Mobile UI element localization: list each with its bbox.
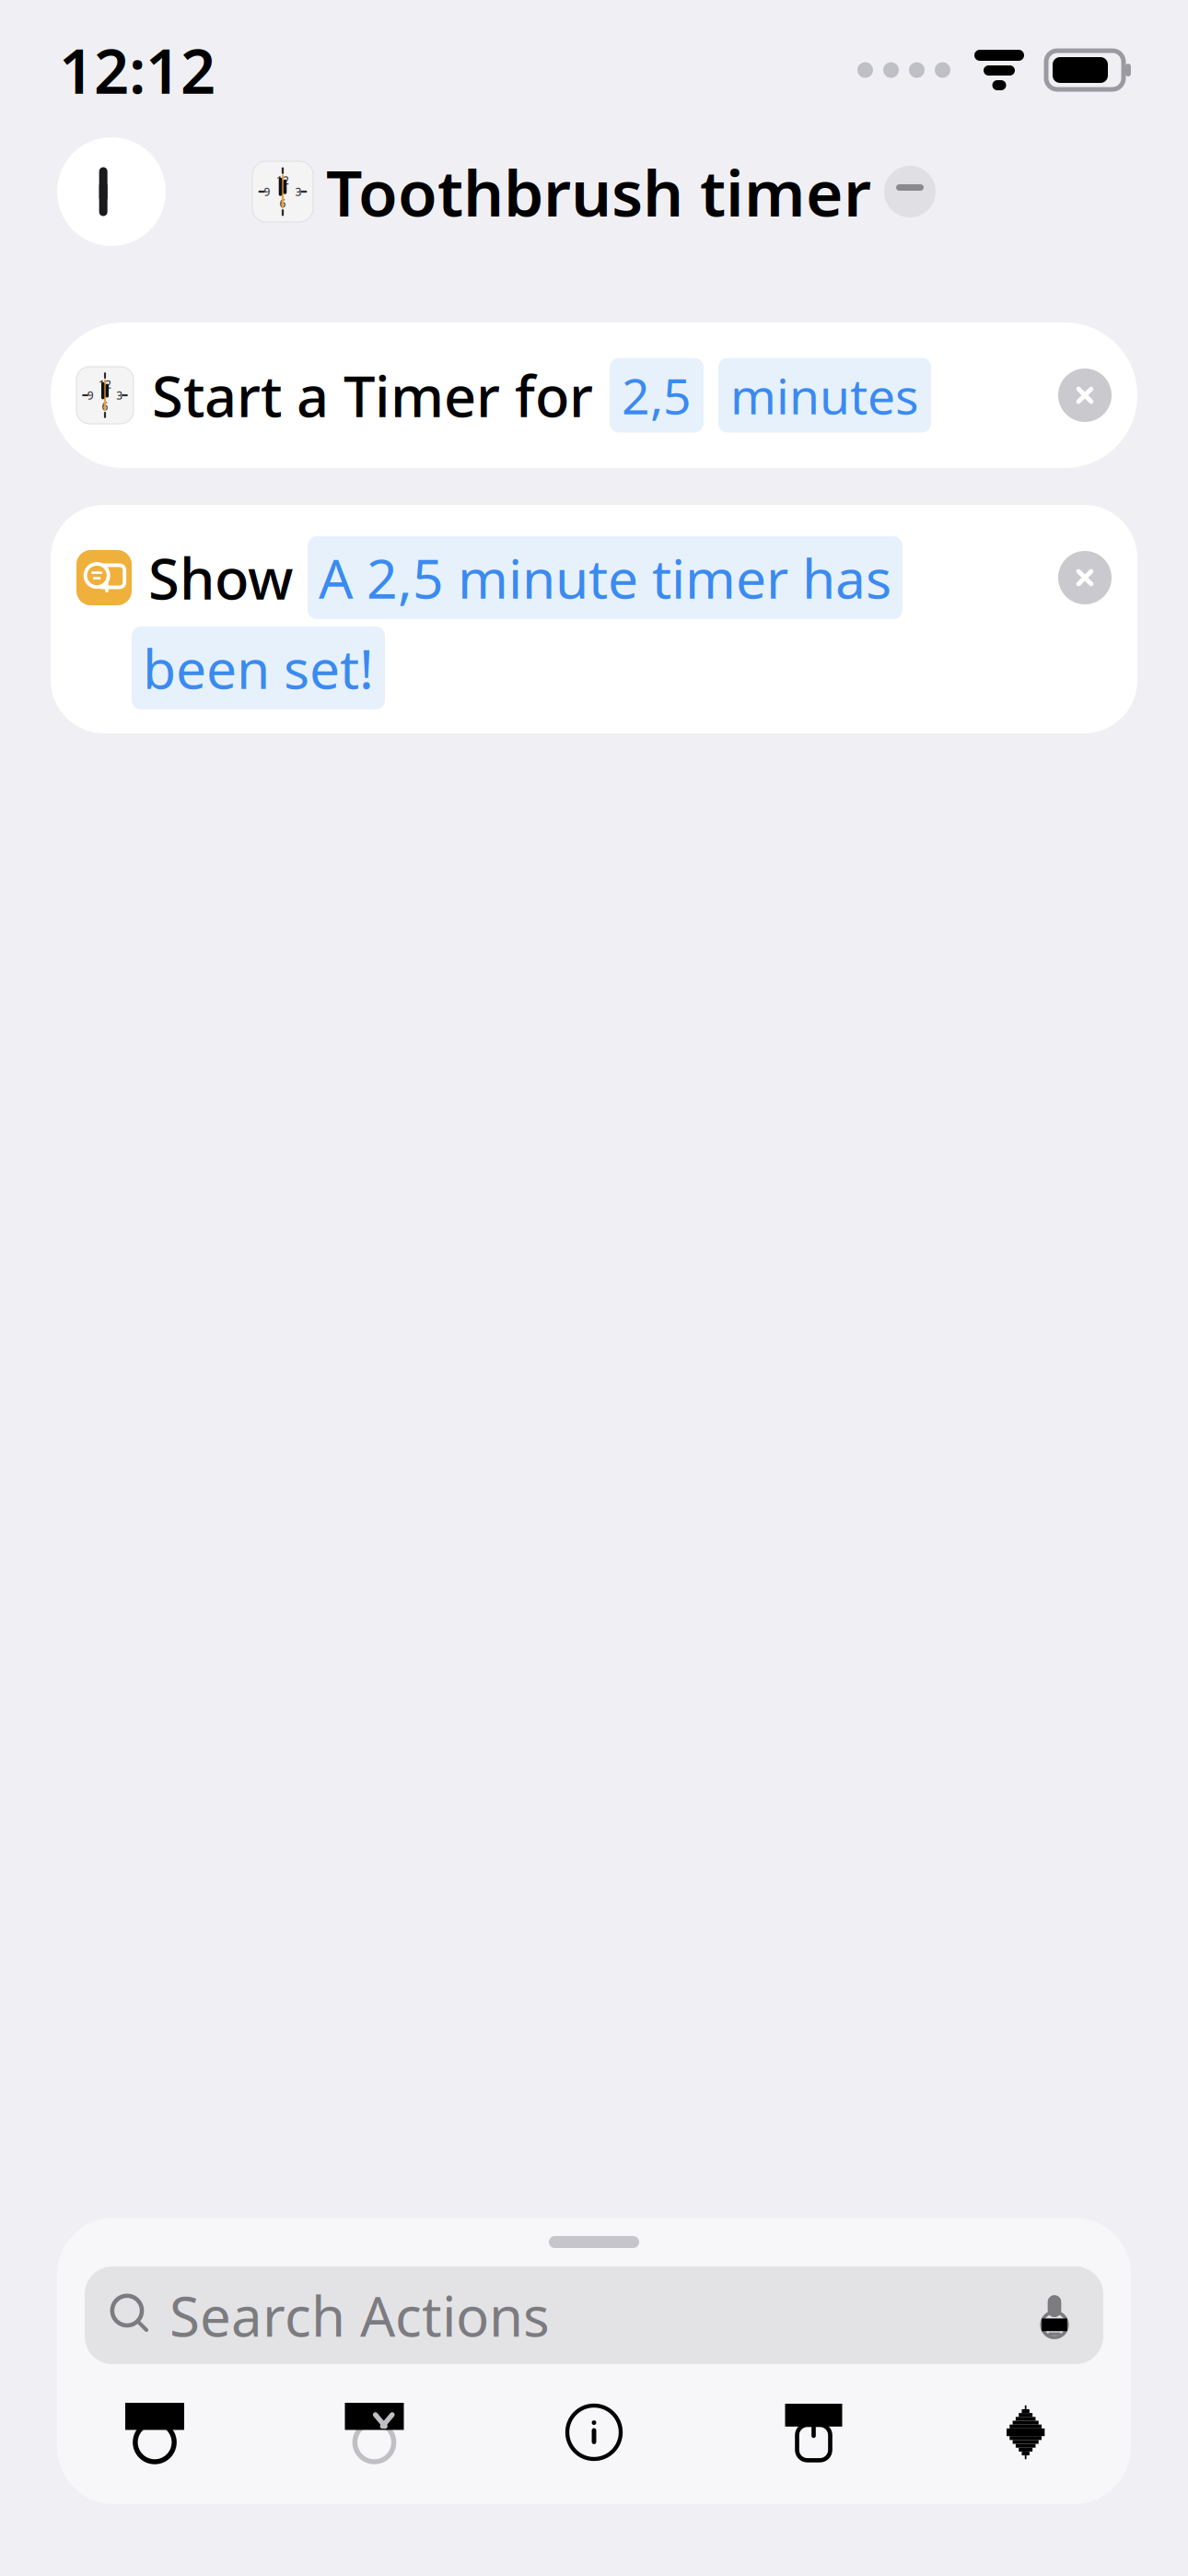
staticText: 3 xyxy=(295,184,302,199)
button[interactable]: Show xyxy=(51,505,1137,733)
button[interactable]: 2,5 xyxy=(610,358,704,432)
staticText: 6 xyxy=(280,196,286,210)
staticText: Toothbrush timer xyxy=(326,149,871,234)
button[interactable]: Remove action xyxy=(1058,369,1112,422)
button[interactable]: Remove action xyxy=(1058,551,1112,604)
staticText: 3 xyxy=(116,388,123,403)
staticText: Show xyxy=(148,540,293,615)
staticText: Start a Timer for xyxy=(152,358,593,433)
button[interactable]: Details xyxy=(539,2384,649,2480)
button[interactable]: Redo xyxy=(319,2384,430,2480)
staticText: 2,5 xyxy=(622,363,692,428)
button[interactable]: Search Actions xyxy=(85,2266,1103,2364)
button[interactable]: 12 xyxy=(51,322,1137,468)
button[interactable]: Share xyxy=(758,2384,869,2480)
button[interactable]: Undo xyxy=(99,2384,210,2480)
staticText: 9 xyxy=(87,388,94,403)
staticText: been set! xyxy=(143,632,374,704)
button[interactable]: 12 xyxy=(252,149,936,234)
staticText: Search Actions xyxy=(169,2279,550,2352)
staticText: A 2,5 minute timer has xyxy=(319,542,891,614)
button[interactable]: minutes xyxy=(718,358,931,432)
staticText: 9 xyxy=(264,184,270,199)
staticText: 12:12 xyxy=(59,29,215,111)
button[interactable]: Back xyxy=(57,137,166,246)
staticText: minutes xyxy=(730,363,919,428)
staticText: 12 xyxy=(276,173,289,187)
staticText: 6 xyxy=(102,399,108,414)
button[interactable]: Run shortcut xyxy=(978,2384,1089,2480)
staticText: 12 xyxy=(99,377,111,392)
